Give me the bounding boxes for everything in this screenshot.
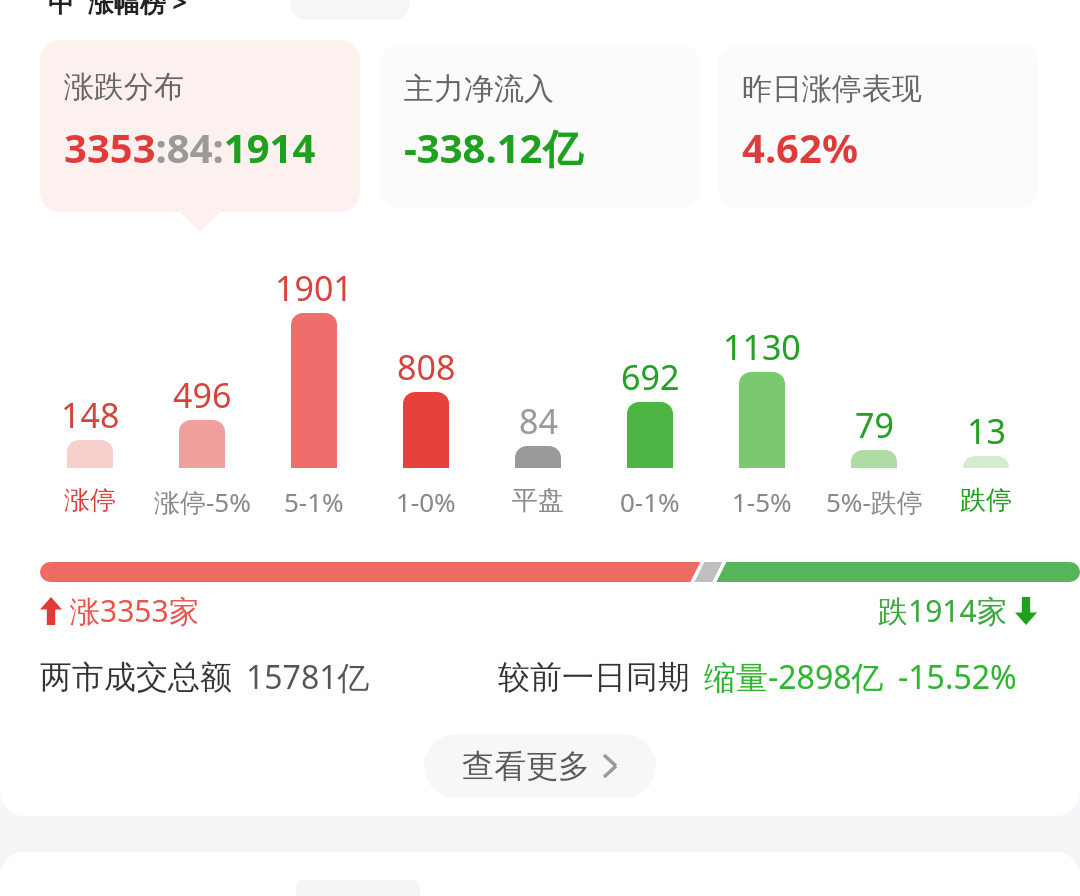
staticText: 3353:84:1914 xyxy=(64,120,316,174)
staticText: 查看更多 xyxy=(462,746,590,786)
staticText: -338.12亿 xyxy=(404,120,583,175)
staticText: 跌停 xyxy=(960,484,1012,517)
staticText: 15781亿 xyxy=(246,655,370,699)
staticText: 692 xyxy=(621,354,680,400)
staticText: 0-1% xyxy=(620,484,680,519)
staticText: 5%-跌停 xyxy=(826,484,923,520)
staticText: 两市成交总额 xyxy=(40,657,232,697)
staticText: 5-1% xyxy=(284,484,344,519)
staticText: -15.52% xyxy=(898,655,1017,699)
other: 查看更多 xyxy=(602,753,618,779)
staticText: 79 xyxy=(855,402,894,448)
button[interactable]: 昨日涨停表现 xyxy=(718,44,1038,208)
staticText: 1130 xyxy=(723,324,801,370)
staticText: 496 xyxy=(173,372,232,418)
staticText: 缩量-2898亿 xyxy=(704,655,884,699)
button[interactable]: 主力净流入 xyxy=(380,44,700,208)
staticText: 平盘 xyxy=(512,484,564,517)
staticText: 4.62% xyxy=(742,120,858,174)
staticText: 较前一日同期 xyxy=(498,657,690,697)
staticText: 涨跌分布 xyxy=(64,68,184,106)
staticText: 1901 xyxy=(275,265,353,311)
staticText: 84 xyxy=(519,398,558,444)
staticText: 808 xyxy=(397,344,456,390)
staticText: 1-0% xyxy=(396,484,456,519)
staticText: 中 涨幅榜 > xyxy=(48,0,188,20)
staticText: 昨日涨停表现 xyxy=(742,70,922,108)
staticText: 1-5% xyxy=(732,484,792,519)
staticText: 涨停-5% xyxy=(154,484,251,520)
staticText: 主力净流入 xyxy=(404,70,554,108)
staticText: 13 xyxy=(967,408,1006,454)
staticText: 148 xyxy=(61,392,120,438)
button[interactable]: 查看更多 xyxy=(424,734,656,798)
staticText: 涨停 xyxy=(64,484,116,517)
button[interactable]: 涨跌分布 xyxy=(40,40,360,212)
staticText: 跌1914家 xyxy=(878,590,1007,631)
staticText: 涨3353家 xyxy=(70,590,199,631)
